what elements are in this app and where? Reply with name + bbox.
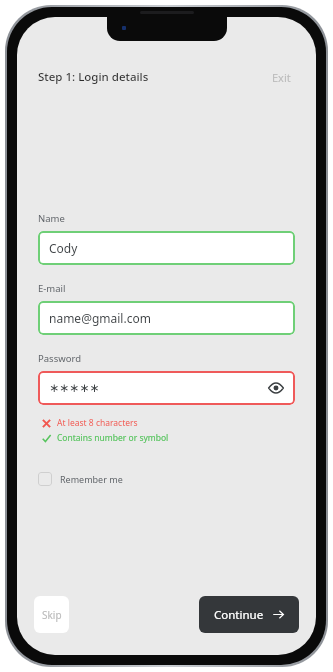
- staticText: Remember me: [60, 473, 123, 485]
- button[interactable]: Continue: [199, 596, 299, 633]
- staticText: Contains number or symbol: [57, 432, 169, 444]
- staticText: E-mail: [38, 282, 66, 295]
- staticText: Password: [38, 352, 81, 365]
- button[interactable]: Remember me: [38, 470, 123, 488]
- staticText: ∗∗∗∗∗: [49, 381, 100, 395]
- button[interactable]: Exit: [268, 66, 295, 89]
- staticText: Continue: [214, 607, 264, 623]
- staticText: Exit: [272, 70, 291, 85]
- staticText: Skip: [42, 608, 62, 622]
- button[interactable]: Show password: [266, 378, 286, 398]
- button[interactable]: Skip: [34, 596, 69, 633]
- staticText: Cody: [49, 240, 78, 256]
- staticText: name@gmail.com: [49, 310, 151, 326]
- button[interactable]: Cody: [38, 231, 295, 265]
- button[interactable]: ∗∗∗∗∗: [38, 371, 295, 405]
- button[interactable]: name@gmail.com: [38, 301, 295, 335]
- staticText: Step 1: Login details: [38, 69, 149, 85]
- staticText: At least 8 characters: [57, 417, 138, 429]
- staticText: Name: [38, 212, 65, 225]
